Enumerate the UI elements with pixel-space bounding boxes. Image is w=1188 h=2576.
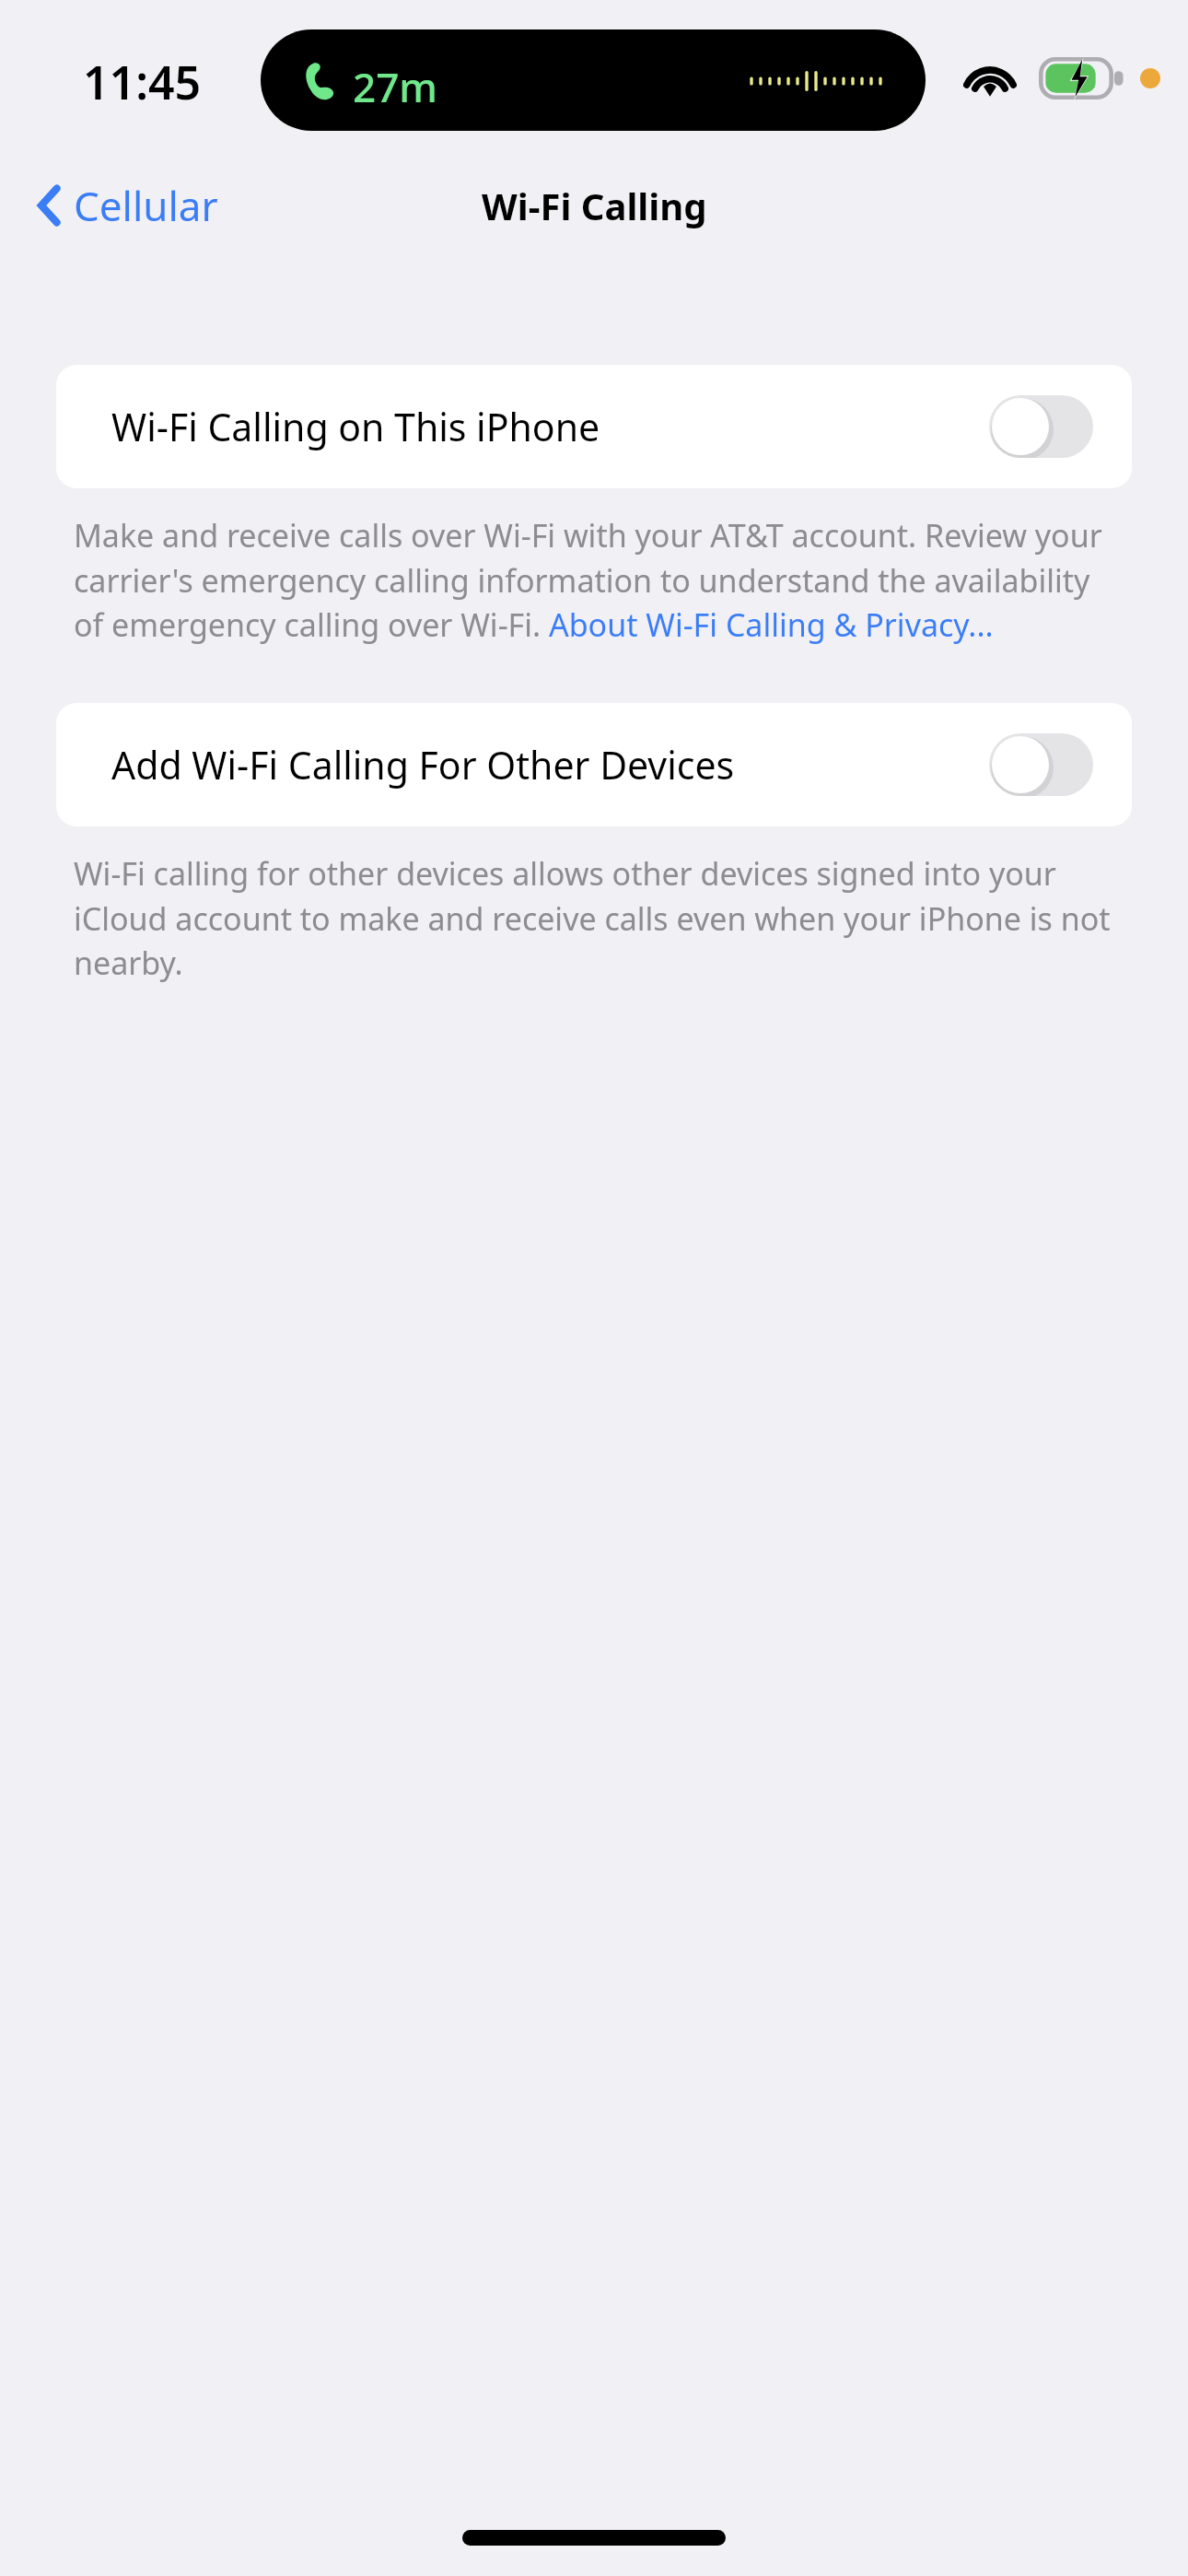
staticText: Make and receive calls over Wi-Fi with y… bbox=[74, 514, 1114, 646]
staticText: Cellular bbox=[74, 178, 218, 233]
staticText: Add Wi-Fi Calling For Other Devices bbox=[111, 739, 989, 790]
button[interactable]: Toggle bbox=[989, 395, 1093, 458]
staticText: Wi-Fi Calling bbox=[482, 181, 707, 230]
staticText: 11:45 bbox=[83, 51, 202, 113]
staticText: Wi-Fi Calling on This iPhone bbox=[111, 401, 989, 452]
button[interactable]: Cellular bbox=[28, 170, 229, 240]
button[interactable]: Toggle bbox=[989, 733, 1093, 796]
staticText: Wi-Fi calling for other devices allows o… bbox=[74, 852, 1114, 984]
staticText: 27m bbox=[353, 59, 438, 114]
button[interactable]: Wi-Fi Calling on This iPhone bbox=[56, 365, 1132, 488]
button[interactable]: Add Wi-Fi Calling For Other Devices bbox=[56, 703, 1132, 826]
